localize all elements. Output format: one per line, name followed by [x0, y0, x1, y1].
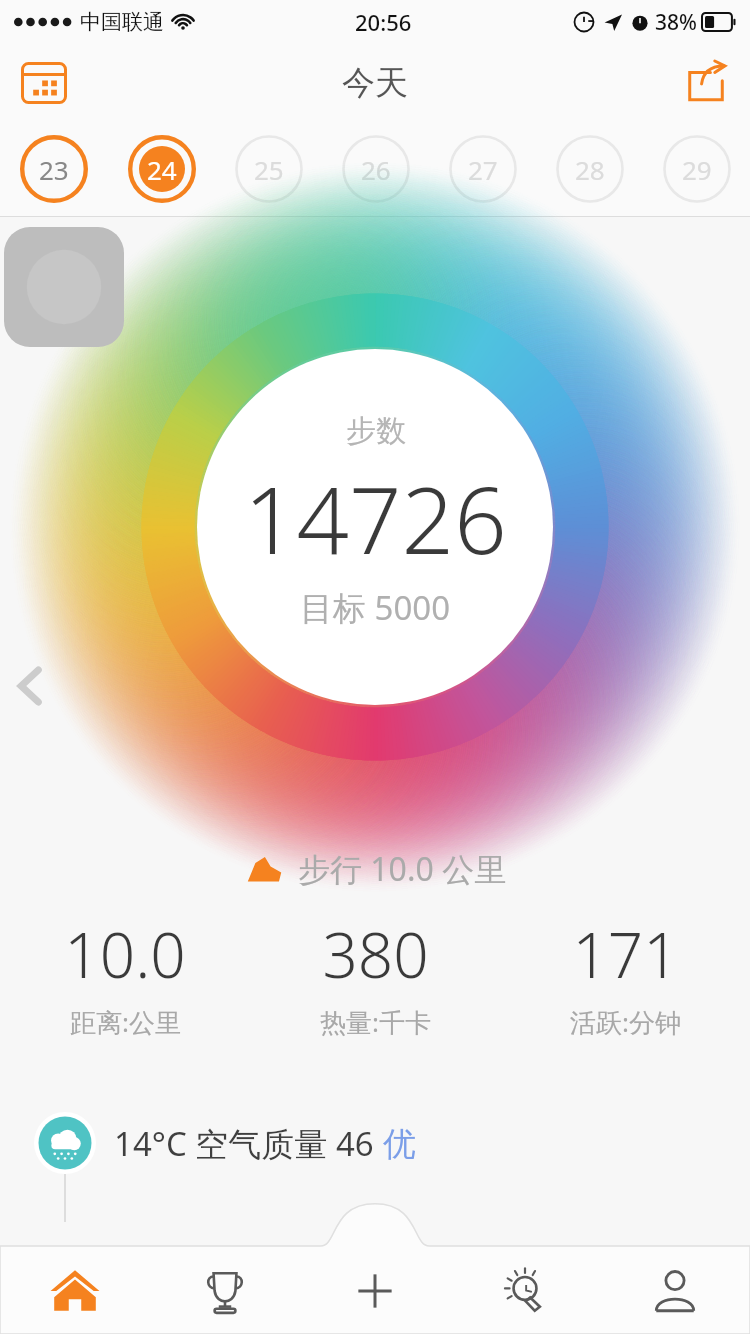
staticText: 14°C 空气质量 46	[114, 1121, 383, 1166]
staticText: 步行 10.0 公里	[298, 847, 507, 891]
staticText: 中国联通	[80, 9, 164, 35]
button[interactable]: Home	[0, 1248, 150, 1334]
button[interactable]: 171	[500, 912, 750, 1040]
button[interactable]: 380	[250, 912, 500, 1040]
button[interactable]: Discover	[450, 1248, 600, 1334]
button[interactable]: 26	[322, 122, 429, 216]
button[interactable]: Calendar	[12, 51, 76, 115]
staticText: 380	[322, 912, 429, 996]
button[interactable]: Share	[674, 51, 738, 115]
staticText: 今天	[342, 62, 408, 104]
button[interactable]: 28	[536, 122, 643, 216]
button[interactable]: Add	[300, 1248, 450, 1334]
staticText: 171	[572, 912, 679, 996]
staticText: 20:56	[355, 7, 412, 37]
staticText: 10.0	[64, 912, 186, 996]
staticText: 步数	[346, 412, 406, 450]
staticText: 14726	[244, 456, 507, 581]
button[interactable]: Trophy	[150, 1248, 300, 1334]
staticText: 距离:公里	[70, 1004, 181, 1040]
button[interactable]: 25	[215, 122, 322, 216]
staticText: 29	[682, 152, 712, 187]
staticText: 38%	[655, 8, 697, 37]
staticText: 27	[468, 152, 498, 187]
button[interactable]: 14°C 空气质量 46	[34, 1112, 750, 1174]
staticText: 目标 5000	[300, 585, 451, 630]
staticText: 25	[254, 152, 284, 187]
staticText: 23	[39, 152, 69, 187]
staticText: 24	[147, 152, 177, 187]
button[interactable]: 24	[108, 122, 215, 216]
staticText: 28	[575, 152, 605, 187]
button[interactable]: 23	[0, 122, 108, 216]
button[interactable]: 27	[429, 122, 536, 216]
button[interactable]: 10.0	[0, 912, 250, 1040]
button[interactable]: Previous	[0, 656, 60, 716]
button[interactable]: 步行 10.0 公里	[244, 847, 507, 891]
staticText: 热量:千卡	[320, 1004, 431, 1040]
button[interactable]: 29	[643, 122, 750, 216]
staticText: 优	[383, 1123, 416, 1165]
staticText: 26	[361, 152, 391, 187]
staticText: 活跃:分钟	[570, 1004, 681, 1040]
button[interactable]: Device	[4, 227, 124, 347]
button[interactable]: Profile	[600, 1248, 750, 1334]
